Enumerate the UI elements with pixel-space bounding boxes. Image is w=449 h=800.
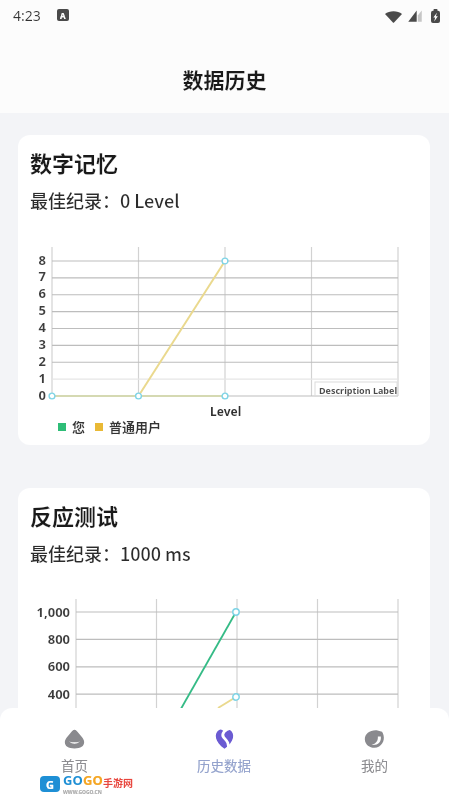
staticText: 手游网 — [103, 775, 133, 789]
staticText: 我的 — [361, 755, 388, 775]
staticText: 7 — [18, 267, 46, 285]
staticText: 反应测试 — [30, 499, 119, 531]
staticText: 首页 — [61, 755, 88, 775]
staticText: G — [46, 777, 54, 792]
staticText: 历史数据 — [197, 755, 251, 775]
staticText: Description Label — [319, 384, 398, 396]
staticText: 3 — [18, 335, 46, 353]
staticText: 2 — [18, 352, 46, 370]
button[interactable]: Home — [0, 708, 149, 775]
staticText: 600 — [18, 657, 70, 675]
staticText: WWW.GOGO.CN — [63, 789, 102, 796]
staticText: 8 — [18, 251, 46, 269]
staticText: 您 — [72, 417, 86, 436]
staticText: 最佳纪录：0 Level — [30, 187, 180, 213]
staticText: 800 — [18, 630, 70, 648]
staticText: 5 — [18, 301, 46, 319]
button[interactable]: History data — [149, 708, 299, 775]
staticText: A — [60, 10, 66, 21]
staticText: 4:23 — [13, 6, 41, 25]
staticText: GO — [63, 771, 83, 789]
staticText: 数据历史 — [0, 64, 449, 94]
staticText: GO — [83, 771, 103, 789]
button[interactable]: 数字记忆 — [18, 135, 430, 445]
staticText: 1 — [18, 369, 46, 387]
button[interactable]: 反应测试 — [18, 488, 430, 778]
staticText: 400 — [18, 685, 70, 703]
staticText: 0 — [18, 386, 46, 404]
staticText: 1,000 — [18, 603, 70, 621]
staticText: 数字记忆 — [30, 146, 119, 178]
staticText: Level — [210, 403, 242, 419]
button[interactable]: Profile — [299, 708, 449, 775]
staticText: 普通用户 — [109, 417, 162, 436]
staticText: 6 — [18, 284, 46, 302]
staticText: 最佳纪录：1000 ms — [30, 540, 191, 566]
staticText: 4 — [18, 318, 46, 336]
